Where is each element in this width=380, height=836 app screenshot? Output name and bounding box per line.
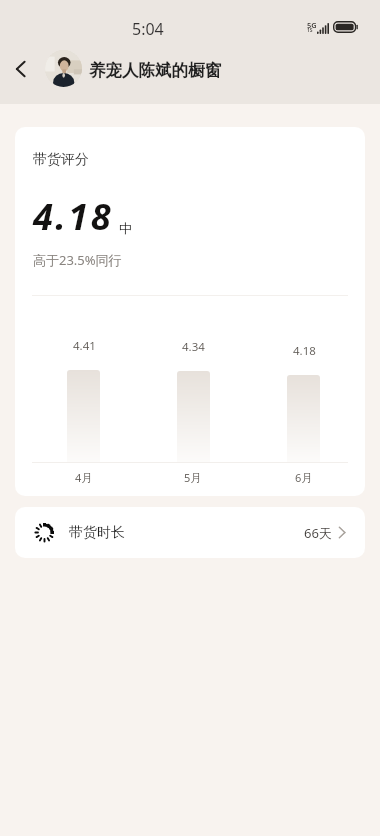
staticText: 带货评分 [33,151,89,169]
staticText: 高于23.5%同行 [33,251,122,269]
staticText: 5月 [184,470,202,485]
staticText: 中 [119,220,132,236]
staticText: 带货时长 [69,524,125,542]
button[interactable]: Back [5,53,37,85]
staticText: 5G [307,20,316,30]
staticText: 66天 [304,524,332,542]
staticText: 1S [307,27,313,34]
staticText: 6月 [295,470,313,485]
button[interactable]: 带货时长 [15,507,365,558]
staticText: 4月 [75,470,93,485]
staticText: 4.18 [33,192,114,241]
staticText: 4.41 [73,338,96,354]
staticText: 5:04 [132,18,164,40]
staticText: 养宠人陈斌的橱窗 [89,60,221,81]
staticText: 4.34 [182,339,205,355]
staticText: 4.18 [293,343,316,359]
